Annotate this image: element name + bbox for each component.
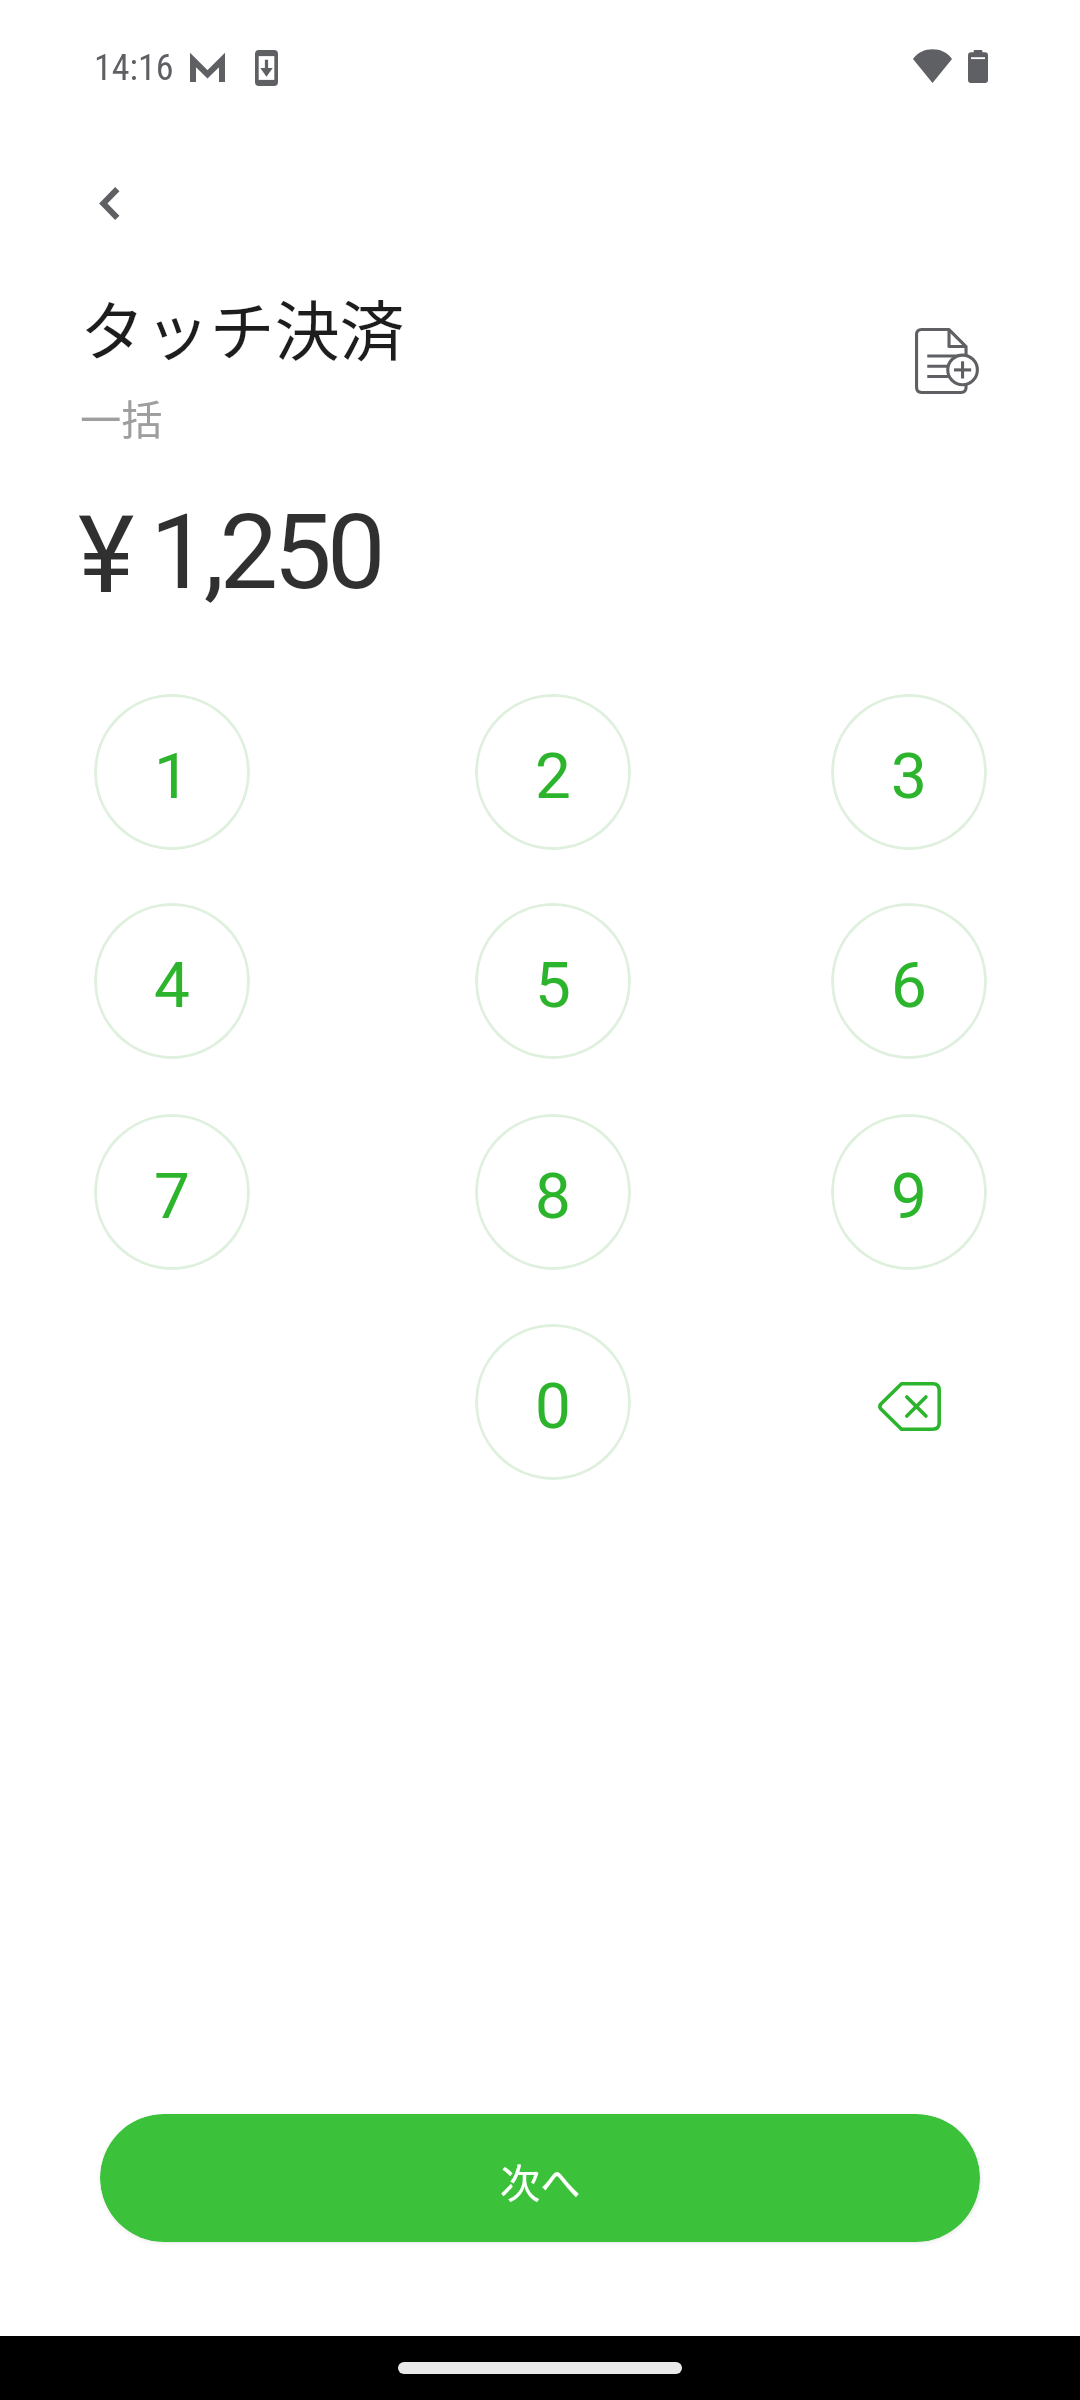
button[interactable]: 次へ (100, 2114, 980, 2242)
staticText: 一括 (80, 387, 163, 447)
staticText: 4 (154, 948, 190, 1023)
button[interactable]: 3 (831, 694, 987, 850)
staticText: 9 (891, 1159, 927, 1234)
button[interactable]: 6 (831, 903, 987, 1059)
button[interactable]: 1 (94, 694, 250, 850)
button[interactable]: 2 (475, 694, 631, 850)
staticText: タッチ決済 (80, 280, 405, 374)
staticText: 次へ (500, 2151, 581, 2209)
button[interactable]: 4 (94, 903, 250, 1059)
staticText: 8 (535, 1159, 571, 1234)
staticText: 1 (154, 739, 190, 814)
button[interactable]: 0 (475, 1324, 631, 1480)
staticText: 1,250 (150, 491, 381, 613)
staticText: 7 (154, 1159, 190, 1234)
button[interactable]: 8 (475, 1114, 631, 1270)
button[interactable]: 9 (831, 1114, 987, 1270)
button[interactable]: 5 (475, 903, 631, 1059)
staticText: 0 (535, 1369, 571, 1444)
staticText: 5 (535, 948, 571, 1023)
staticText: 2 (535, 739, 571, 814)
button[interactable]: Add memo (891, 316, 1001, 406)
staticText: 14:16 (94, 47, 174, 89)
button[interactable]: Back (53, 148, 163, 258)
staticText: 3 (891, 739, 927, 814)
staticText: 6 (891, 948, 927, 1023)
button[interactable]: 7 (94, 1114, 250, 1270)
staticText: ¥ (78, 493, 135, 619)
button[interactable]: Delete (831, 1324, 987, 1480)
